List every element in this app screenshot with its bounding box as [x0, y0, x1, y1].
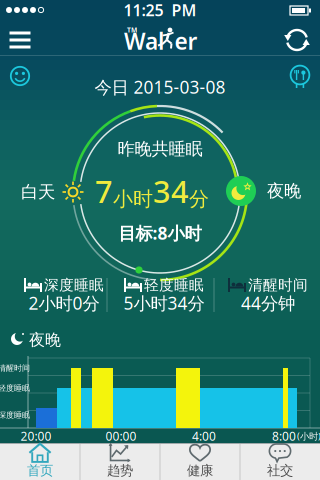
staticText: 小时 [113, 187, 153, 211]
staticText: 4:00 [192, 428, 216, 444]
button[interactable]: Diet [288, 65, 312, 93]
staticText: 今日 2015-03-08 [94, 75, 225, 98]
staticText: 2小时0分 [28, 291, 99, 314]
staticText: 分 [189, 187, 209, 211]
staticText: 8:00 [272, 428, 296, 444]
staticText: 目标:8小时 [118, 221, 201, 244]
staticText: 趋势 [107, 462, 133, 479]
staticText: 20:00 [20, 428, 51, 444]
staticText: 11:25 PM [123, 0, 196, 21]
button[interactable]: Sync [284, 27, 310, 53]
staticText: TM [127, 26, 137, 34]
staticText: 夜晚 [29, 330, 61, 350]
staticText: 清醒时间 [0, 363, 30, 373]
staticText: 5小时34分 [123, 291, 204, 314]
staticText: 首页 [27, 462, 53, 479]
button[interactable]: 健康 [160, 443, 239, 479]
staticText: 44分钟 [241, 291, 295, 314]
staticText: 健康 [187, 462, 213, 479]
staticText: er [174, 26, 197, 56]
staticText: Wal [124, 26, 164, 56]
staticText: 昨晚共睡眠 [117, 138, 202, 160]
button[interactable]: 趋势 [80, 443, 159, 479]
staticText: 轻度睡眠 [144, 276, 204, 294]
staticText: 社交 [267, 462, 293, 479]
staticText: 白天 [21, 181, 55, 203]
button[interactable]: 首页 [0, 443, 79, 479]
staticText: 深度睡眠 [44, 276, 104, 294]
staticText: 34 [153, 171, 189, 211]
staticText: 清醒时间 [248, 276, 308, 294]
staticText: 深度睡眠 [0, 410, 30, 420]
button[interactable]: 社交 [240, 443, 319, 479]
staticText: (小时) [297, 430, 320, 442]
staticText: 夜晚 [267, 180, 301, 202]
button[interactable]: Mood [9, 65, 31, 87]
staticText: 轻度睡眠 [0, 383, 30, 393]
staticText: 00:00 [105, 428, 136, 444]
staticText: 7 [95, 171, 113, 211]
button[interactable]: Menu [9, 29, 30, 48]
